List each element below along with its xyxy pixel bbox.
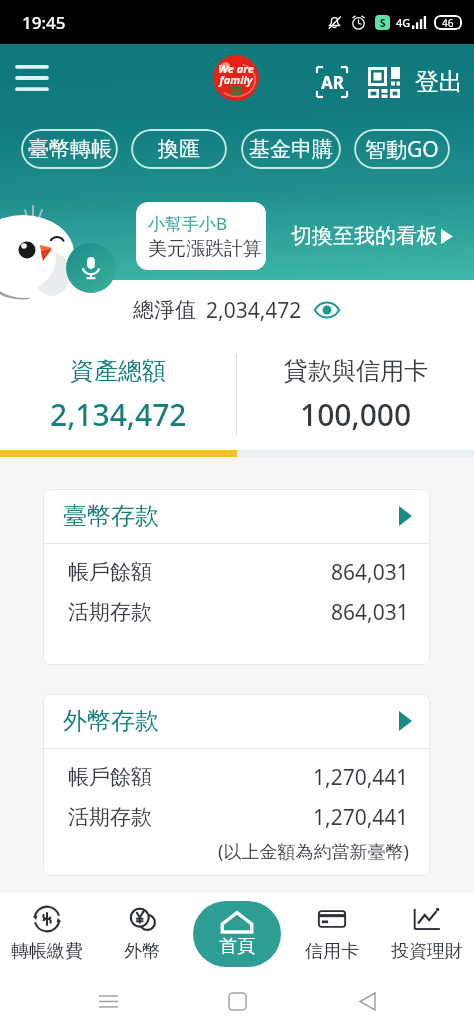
button[interactable]: 臺幣存款 bbox=[43, 489, 430, 543]
staticText: 總淨值 bbox=[133, 297, 196, 323]
button[interactable]: 基金申購 bbox=[241, 129, 341, 169]
staticText: 1,270,441 bbox=[313, 763, 409, 792]
button[interactable]: 換匯 bbox=[131, 129, 227, 169]
staticText: 小幫手小B bbox=[148, 212, 228, 235]
button[interactable]: 首頁 bbox=[193, 901, 281, 967]
button[interactable]: Back bbox=[345, 979, 389, 1023]
staticText: 46 bbox=[442, 16, 454, 30]
button[interactable]: 智動GO bbox=[354, 129, 450, 169]
staticText: 19:45 bbox=[22, 11, 66, 34]
button[interactable]: Home bbox=[215, 979, 259, 1023]
button[interactable]: 小幫手小B bbox=[136, 202, 266, 270]
staticText: S bbox=[380, 16, 386, 30]
button[interactable]: 資產總額 bbox=[0, 340, 236, 450]
button[interactable]: We are family bbox=[213, 55, 259, 101]
staticText: 外幣 bbox=[124, 940, 160, 963]
button[interactable]: 貸款與信用卡 bbox=[237, 340, 474, 450]
staticText: AR bbox=[321, 71, 344, 94]
staticText: 臺幣存款 bbox=[63, 501, 159, 531]
button[interactable]: QR code scanner bbox=[365, 63, 403, 101]
staticText: 864,031 bbox=[331, 558, 409, 587]
staticText: 活期存款 bbox=[68, 599, 152, 625]
staticText: 帳戶餘額 bbox=[68, 764, 152, 790]
staticText: 首頁 bbox=[219, 935, 255, 958]
button[interactable]: Menu bbox=[8, 54, 56, 102]
staticText: 4G bbox=[396, 15, 411, 30]
staticText: 2,134,472 bbox=[50, 394, 187, 435]
staticText: 活期存款 bbox=[68, 804, 152, 830]
staticText: 投資理財 bbox=[391, 940, 463, 963]
button[interactable]: 轉帳繳費 bbox=[0, 893, 94, 975]
staticText: (以上金額為約當新臺幣) bbox=[218, 839, 409, 864]
button[interactable]: Voice assistant bbox=[66, 243, 116, 293]
button[interactable]: 信用卡 bbox=[284, 893, 379, 975]
staticText: 2,034,472 bbox=[206, 296, 302, 325]
staticText: 登出 bbox=[415, 67, 463, 97]
button[interactable]: 投資理財 bbox=[379, 893, 474, 975]
staticText: We are family bbox=[218, 61, 254, 87]
staticText: 信用卡 bbox=[305, 940, 359, 963]
button[interactable]: 登出 bbox=[412, 59, 466, 105]
button[interactable]: 切換至我的看板 bbox=[288, 220, 456, 252]
staticText: 100,000 bbox=[300, 394, 412, 435]
staticText: 外幣存款 bbox=[63, 706, 159, 736]
button[interactable]: 臺幣轉帳 bbox=[21, 129, 118, 169]
button[interactable]: 活期存款 bbox=[43, 592, 430, 632]
staticText: 1,270,441 bbox=[313, 803, 409, 832]
button[interactable]: Toggle amount visibility bbox=[313, 296, 341, 324]
button[interactable]: 外幣存款 bbox=[43, 694, 430, 748]
staticText: 換匯 bbox=[158, 136, 200, 162]
staticText: 切換至我的看板 bbox=[291, 223, 438, 249]
staticText: 資產總額 bbox=[70, 356, 166, 386]
button[interactable]: Recents bbox=[86, 979, 130, 1023]
staticText: 臺幣轉帳 bbox=[28, 136, 112, 162]
staticText: 帳戶餘額 bbox=[68, 559, 152, 585]
button[interactable]: 帳戶餘額 bbox=[43, 757, 430, 797]
staticText: 智動GO bbox=[365, 135, 439, 164]
button[interactable]: 活期存款 bbox=[43, 797, 430, 837]
staticText: 美元漲跌計算 bbox=[148, 237, 262, 261]
staticText: 貸款與信用卡 bbox=[284, 356, 428, 386]
staticText: 864,031 bbox=[331, 598, 409, 627]
staticText: 基金申購 bbox=[249, 136, 333, 162]
staticText: 轉帳繳費 bbox=[11, 940, 83, 963]
button[interactable]: AR bbox=[313, 63, 351, 101]
button[interactable]: 帳戶餘額 bbox=[43, 552, 430, 592]
button[interactable]: 外幣 bbox=[94, 893, 189, 975]
